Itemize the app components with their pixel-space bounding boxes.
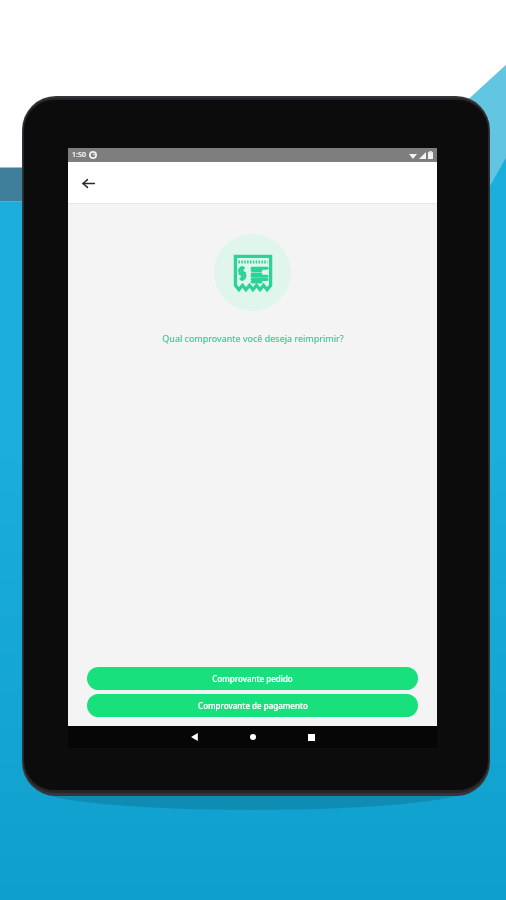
button[interactable]: Recents	[296, 726, 326, 748]
staticText: Comprovante pedido	[212, 673, 293, 684]
button[interactable]: Comprovante de pagamento	[87, 694, 418, 717]
button[interactable]: Home	[238, 726, 268, 748]
button[interactable]: Back	[180, 726, 210, 748]
staticText: Comprovante de pagamento	[198, 700, 308, 711]
staticText: Qual comprovante você deseja reimprimir?	[162, 332, 344, 344]
staticText: 1:50	[72, 150, 86, 160]
button[interactable]: Voltar	[73, 168, 103, 198]
button[interactable]: Comprovante pedido	[87, 667, 418, 690]
